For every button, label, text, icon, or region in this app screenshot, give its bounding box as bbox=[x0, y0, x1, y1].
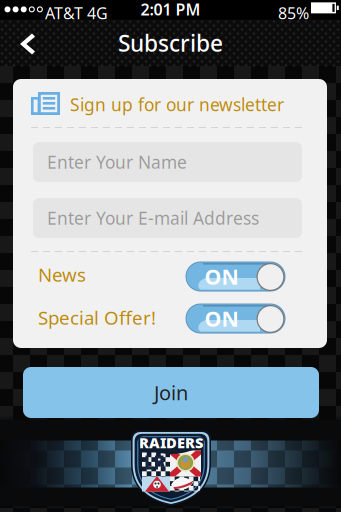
staticText: ON bbox=[204, 304, 238, 333]
staticText: Enter Your E-mail Address bbox=[47, 206, 259, 229]
button[interactable]: Join bbox=[23, 367, 319, 418]
staticText: 85% bbox=[278, 2, 309, 24]
staticText: Sign up for our newsletter bbox=[70, 93, 284, 116]
staticText: 4G bbox=[87, 2, 108, 24]
button[interactable]: Special Offer, on bbox=[186, 304, 285, 333]
staticText: News bbox=[38, 262, 86, 287]
button[interactable]: Back bbox=[0, 20, 49, 66]
staticText: AT&T bbox=[45, 2, 83, 24]
staticText: ON bbox=[204, 262, 238, 291]
staticText: 2:01 PM bbox=[140, 0, 200, 20]
button[interactable]: News, on bbox=[186, 262, 285, 291]
staticText: Subscribe bbox=[118, 28, 223, 58]
staticText: Join bbox=[154, 379, 188, 406]
staticText: Special Offer! bbox=[38, 305, 156, 330]
staticText: Enter Your Name bbox=[47, 150, 187, 173]
staticText: RAIDERS bbox=[139, 433, 203, 452]
